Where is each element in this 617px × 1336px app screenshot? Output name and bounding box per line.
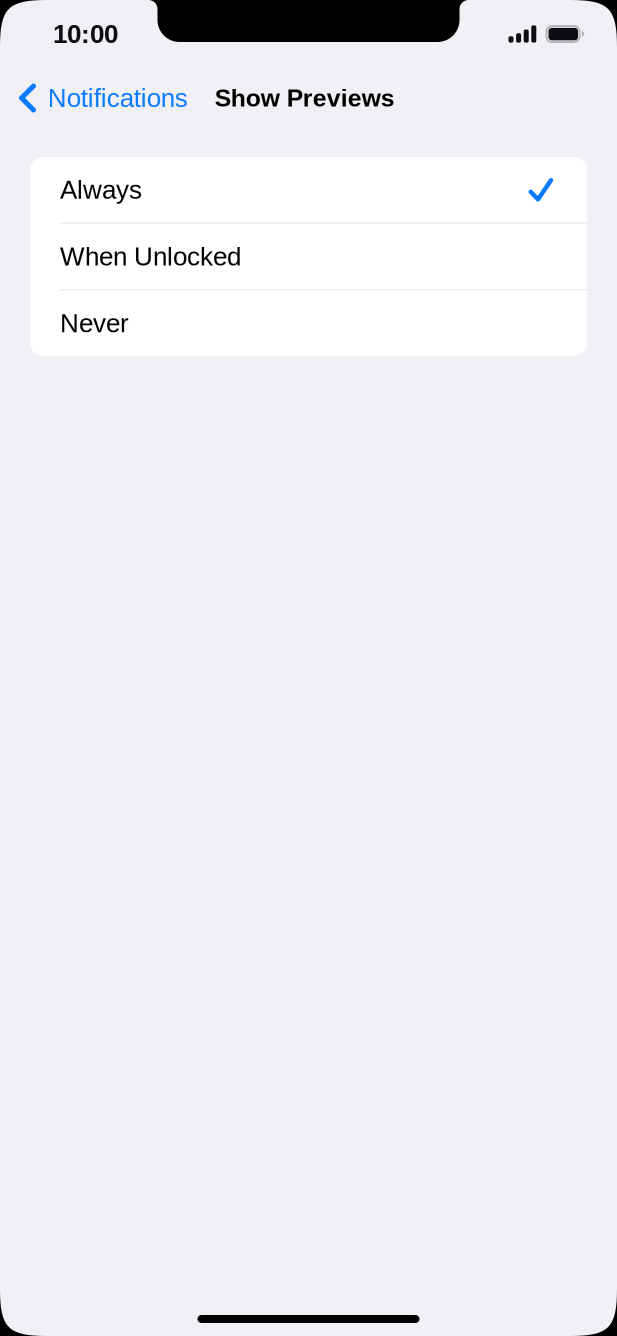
staticText: Never (60, 309, 129, 338)
button[interactable]: When Unlocked (30, 224, 587, 289)
button[interactable]: Never (30, 290, 587, 356)
staticText: Show Previews (215, 84, 395, 112)
button[interactable]: Notifications (0, 62, 200, 134)
staticText: Always (60, 175, 142, 204)
staticText: Notifications (48, 83, 188, 112)
button[interactable]: Always (30, 157, 587, 223)
staticText: 10:00 (53, 19, 118, 48)
staticText: When Unlocked (60, 242, 241, 271)
